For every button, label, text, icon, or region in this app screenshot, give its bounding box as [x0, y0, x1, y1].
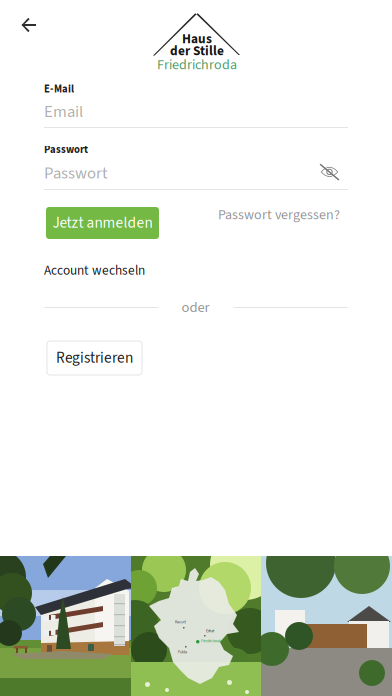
staticText: Erfurt: [206, 628, 214, 634]
staticText: Passwort: [44, 142, 88, 157]
button[interactable]: Show password: [316, 160, 343, 183]
button[interactable]: Jetzt anmelden: [46, 207, 159, 239]
staticText: Passwort vergessen?: [218, 205, 340, 225]
staticText: Email: [44, 100, 83, 124]
staticText: oder: [181, 297, 209, 318]
staticText: der Stille: [170, 41, 224, 60]
staticText: Passwort: [44, 161, 108, 185]
staticText: Friedrichroda: [201, 638, 222, 644]
staticText: Friedrichroda: [157, 55, 237, 75]
button[interactable]: Account wechseln: [44, 261, 145, 280]
staticText: Account wechseln: [44, 261, 145, 280]
staticText: Jetzt anmelden: [52, 212, 152, 234]
staticText: Haus: [182, 29, 212, 48]
staticText: E-Mail: [44, 81, 74, 97]
staticText: Fulda: [178, 649, 187, 655]
button[interactable]: Back: [12, 8, 46, 42]
button[interactable]: Registrieren: [47, 341, 142, 375]
staticText: Registrieren: [56, 347, 133, 369]
staticText: Kassel: [175, 619, 186, 625]
button[interactable]: Passwort vergessen?: [218, 205, 340, 225]
